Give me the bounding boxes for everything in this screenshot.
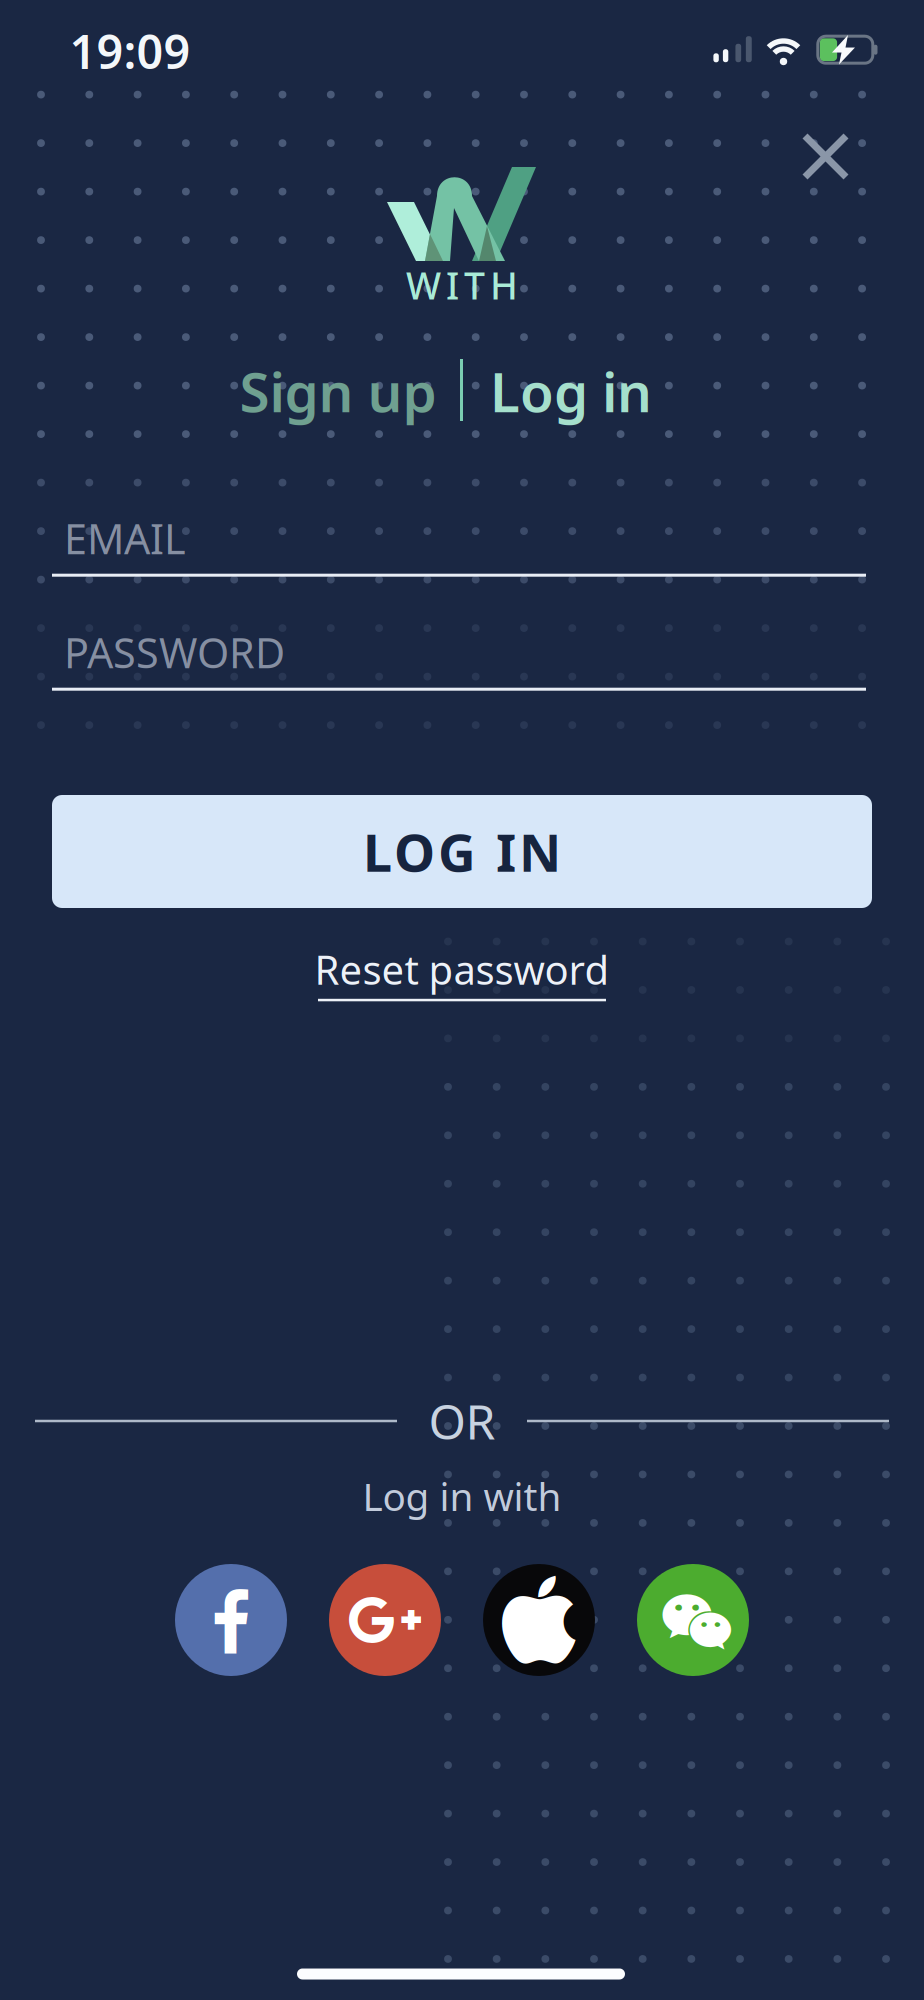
staticText: Sign up xyxy=(239,355,436,427)
button[interactable]: Log in xyxy=(490,355,652,427)
button[interactable]:  xyxy=(329,1564,441,1676)
button[interactable]:  xyxy=(483,1564,595,1676)
button[interactable] xyxy=(790,121,861,192)
button[interactable]:  xyxy=(637,1564,749,1676)
staticText:  xyxy=(211,1589,251,1659)
button[interactable]: Reset password xyxy=(314,943,609,1001)
staticText:  xyxy=(349,1592,421,1648)
button[interactable]:  xyxy=(175,1564,287,1676)
button[interactable]: EMAIL xyxy=(52,512,866,575)
staticText: EMAIL xyxy=(64,511,186,566)
staticText: Reset password xyxy=(314,943,609,996)
staticText: PASSWORD xyxy=(64,625,285,680)
staticText: Log in xyxy=(490,355,652,427)
button[interactable]: PASSWORD xyxy=(52,626,866,689)
staticText:  xyxy=(502,1576,576,1670)
staticText: 19:09 xyxy=(69,20,190,82)
staticText: WITH xyxy=(406,260,518,310)
staticText:  xyxy=(662,1592,731,1652)
staticText: OR xyxy=(428,1389,495,1453)
button[interactable]: LOG IN xyxy=(52,795,872,908)
button[interactable]: Sign up xyxy=(239,355,436,427)
staticText: LOG IN xyxy=(363,817,561,886)
staticText: Log in with xyxy=(362,1470,561,1522)
